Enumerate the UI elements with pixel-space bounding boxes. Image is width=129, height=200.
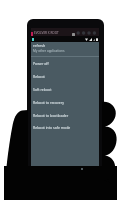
button[interactable] xyxy=(31,28,99,36)
staticText: Reboot xyxy=(33,74,45,79)
button[interactable]: Soft reboot xyxy=(31,83,99,96)
button[interactable]: Reboot to recovery xyxy=(31,96,99,109)
staticText: EVOLVER X ROOT xyxy=(34,31,59,35)
staticText: Soft reboot xyxy=(33,87,52,92)
button[interactable]: Notification actions xyxy=(76,31,97,35)
staticText: My other applications xyxy=(33,49,65,53)
button[interactable]: Screenshot xyxy=(72,33,75,36)
button[interactable]: Reboot into safe mode xyxy=(31,121,99,133)
staticText: Reboot to recovery xyxy=(33,100,65,105)
staticText: refresh xyxy=(33,43,46,48)
button[interactable]: Reboot to bootloader xyxy=(31,109,99,121)
staticText: Power off xyxy=(33,61,49,66)
button[interactable]: Reboot xyxy=(31,70,99,83)
staticText: Reboot into safe mode xyxy=(33,125,71,130)
button[interactable]: Power off xyxy=(31,57,99,70)
staticText: Reboot to bootloader xyxy=(33,113,69,118)
button[interactable]: refresh xyxy=(31,42,99,57)
